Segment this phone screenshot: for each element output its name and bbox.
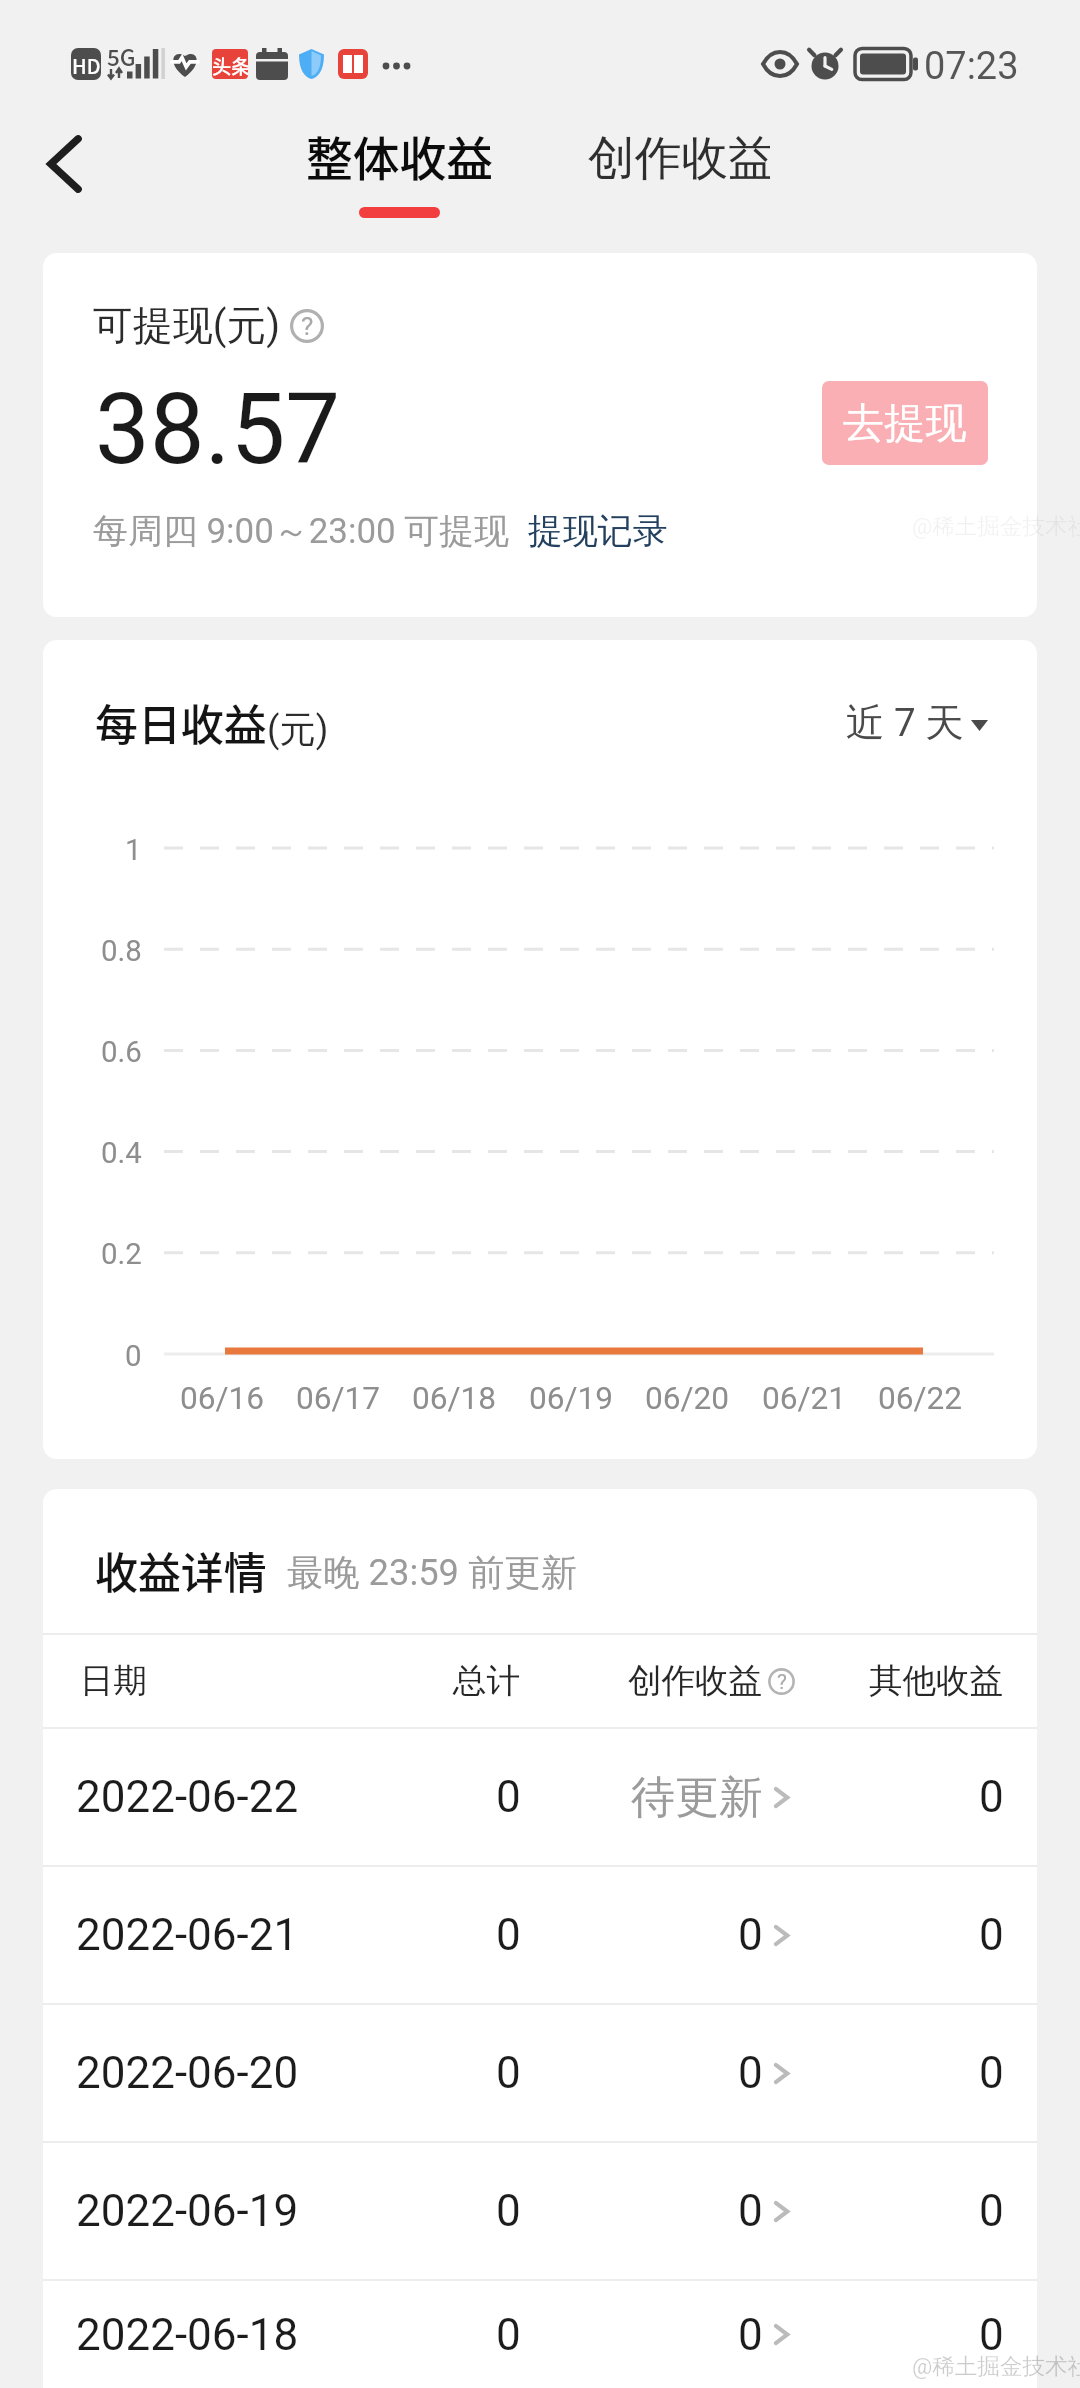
staticText: 06/16 (180, 1380, 265, 1417)
staticText: HD (72, 51, 101, 80)
staticText: 每日收益 (95, 691, 267, 753)
staticText: 5G (107, 40, 136, 73)
staticText: 头条 (212, 52, 248, 80)
staticText: 38.57 (95, 372, 341, 486)
staticText: 0 (125, 1339, 142, 1373)
staticText: 近 7 天 (846, 699, 964, 748)
staticText: 06/17 (296, 1380, 381, 1417)
staticText: 2022-06-21 (76, 1909, 299, 1961)
staticText: ? (301, 311, 314, 342)
staticText: 总计 (453, 1660, 521, 1702)
staticText: 0 (496, 1771, 521, 1823)
staticText: @稀土掘金技术社区 (912, 512, 1080, 540)
button[interactable]: 2022-06-18 (43, 2281, 1037, 2388)
staticText: 0.8 (101, 934, 142, 968)
staticText: 0.2 (101, 1237, 142, 1271)
staticText: 日期 (80, 1660, 148, 1702)
button[interactable]: 2022-06-20 (43, 2005, 1037, 2141)
button[interactable]: 2022-06-22 (43, 1729, 1037, 1865)
staticText: 每周四 9:00～23:00 可提现 (93, 509, 510, 553)
staticText: 提现记录 (528, 509, 668, 553)
button[interactable]: 去提现 (822, 381, 988, 465)
staticText: 2022-06-18 (76, 2309, 299, 2361)
button[interactable]: 2022-06-21 (43, 1867, 1037, 2003)
staticText: 最晚 23:59 前更新 (287, 1550, 577, 1596)
staticText: 2022-06-19 (76, 2185, 299, 2237)
staticText: 06/20 (645, 1380, 730, 1417)
staticText: 06/19 (529, 1380, 614, 1417)
staticText: 06/21 (762, 1380, 847, 1417)
staticText: 待更新 (631, 1770, 763, 1825)
staticText: 0 (979, 1771, 1004, 1823)
staticText: 0.4 (101, 1136, 142, 1170)
staticText: 0 (496, 2047, 521, 2099)
staticText: (元) (267, 707, 329, 753)
staticText: 2022-06-20 (76, 2047, 299, 2099)
button[interactable]: 提现记录 (528, 509, 668, 553)
staticText: 0 (738, 2047, 763, 2099)
staticText: @稀土掘金技术社区 (912, 2352, 1080, 2380)
staticText: 收益详情 (95, 1539, 267, 1601)
staticText: 0 (979, 1909, 1004, 1961)
staticText: 06/22 (878, 1380, 963, 1417)
staticText: 07:23 (924, 44, 1019, 88)
staticText: 创作收益 (628, 1660, 763, 1702)
staticText: ? (777, 1670, 787, 1694)
staticText: 0 (738, 2309, 763, 2361)
button[interactable]: 近 7 天 (846, 699, 964, 748)
button[interactable]: 创作收益 (588, 129, 770, 188)
button[interactable]: 整体收益 (306, 122, 494, 190)
staticText: 0 (738, 1909, 763, 1961)
staticText: 0 (979, 2185, 1004, 2237)
staticText: 创作收益 (588, 129, 770, 188)
staticText: 可提现(元) (93, 301, 281, 351)
staticText: 0 (496, 1909, 521, 1961)
staticText: 0 (979, 2309, 1004, 2361)
staticText: 0 (496, 2185, 521, 2237)
staticText: 1 (125, 833, 142, 867)
button[interactable]: Back (24, 124, 104, 204)
staticText: 去提现 (843, 397, 967, 449)
staticText: 06/18 (412, 1380, 497, 1417)
button[interactable]: 2022-06-19 (43, 2143, 1037, 2279)
staticText: 0 (496, 2309, 521, 2361)
staticText: 2022-06-22 (76, 1771, 299, 1823)
staticText: 0 (979, 2047, 1004, 2099)
staticText: 0 (738, 2185, 763, 2237)
staticText: 其他收益 (869, 1660, 1004, 1702)
staticText: 0.6 (101, 1035, 142, 1069)
staticText: 整体收益 (306, 122, 494, 190)
